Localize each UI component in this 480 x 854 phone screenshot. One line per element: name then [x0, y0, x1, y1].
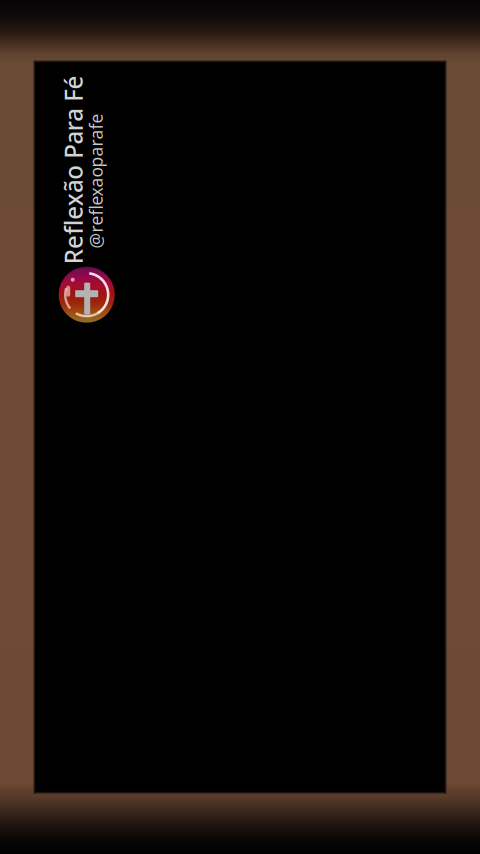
- staticText: Reflexão Para Fé: [0, 152, 172, 186]
- staticText: @reflexaoparafe: [26, 167, 161, 190]
